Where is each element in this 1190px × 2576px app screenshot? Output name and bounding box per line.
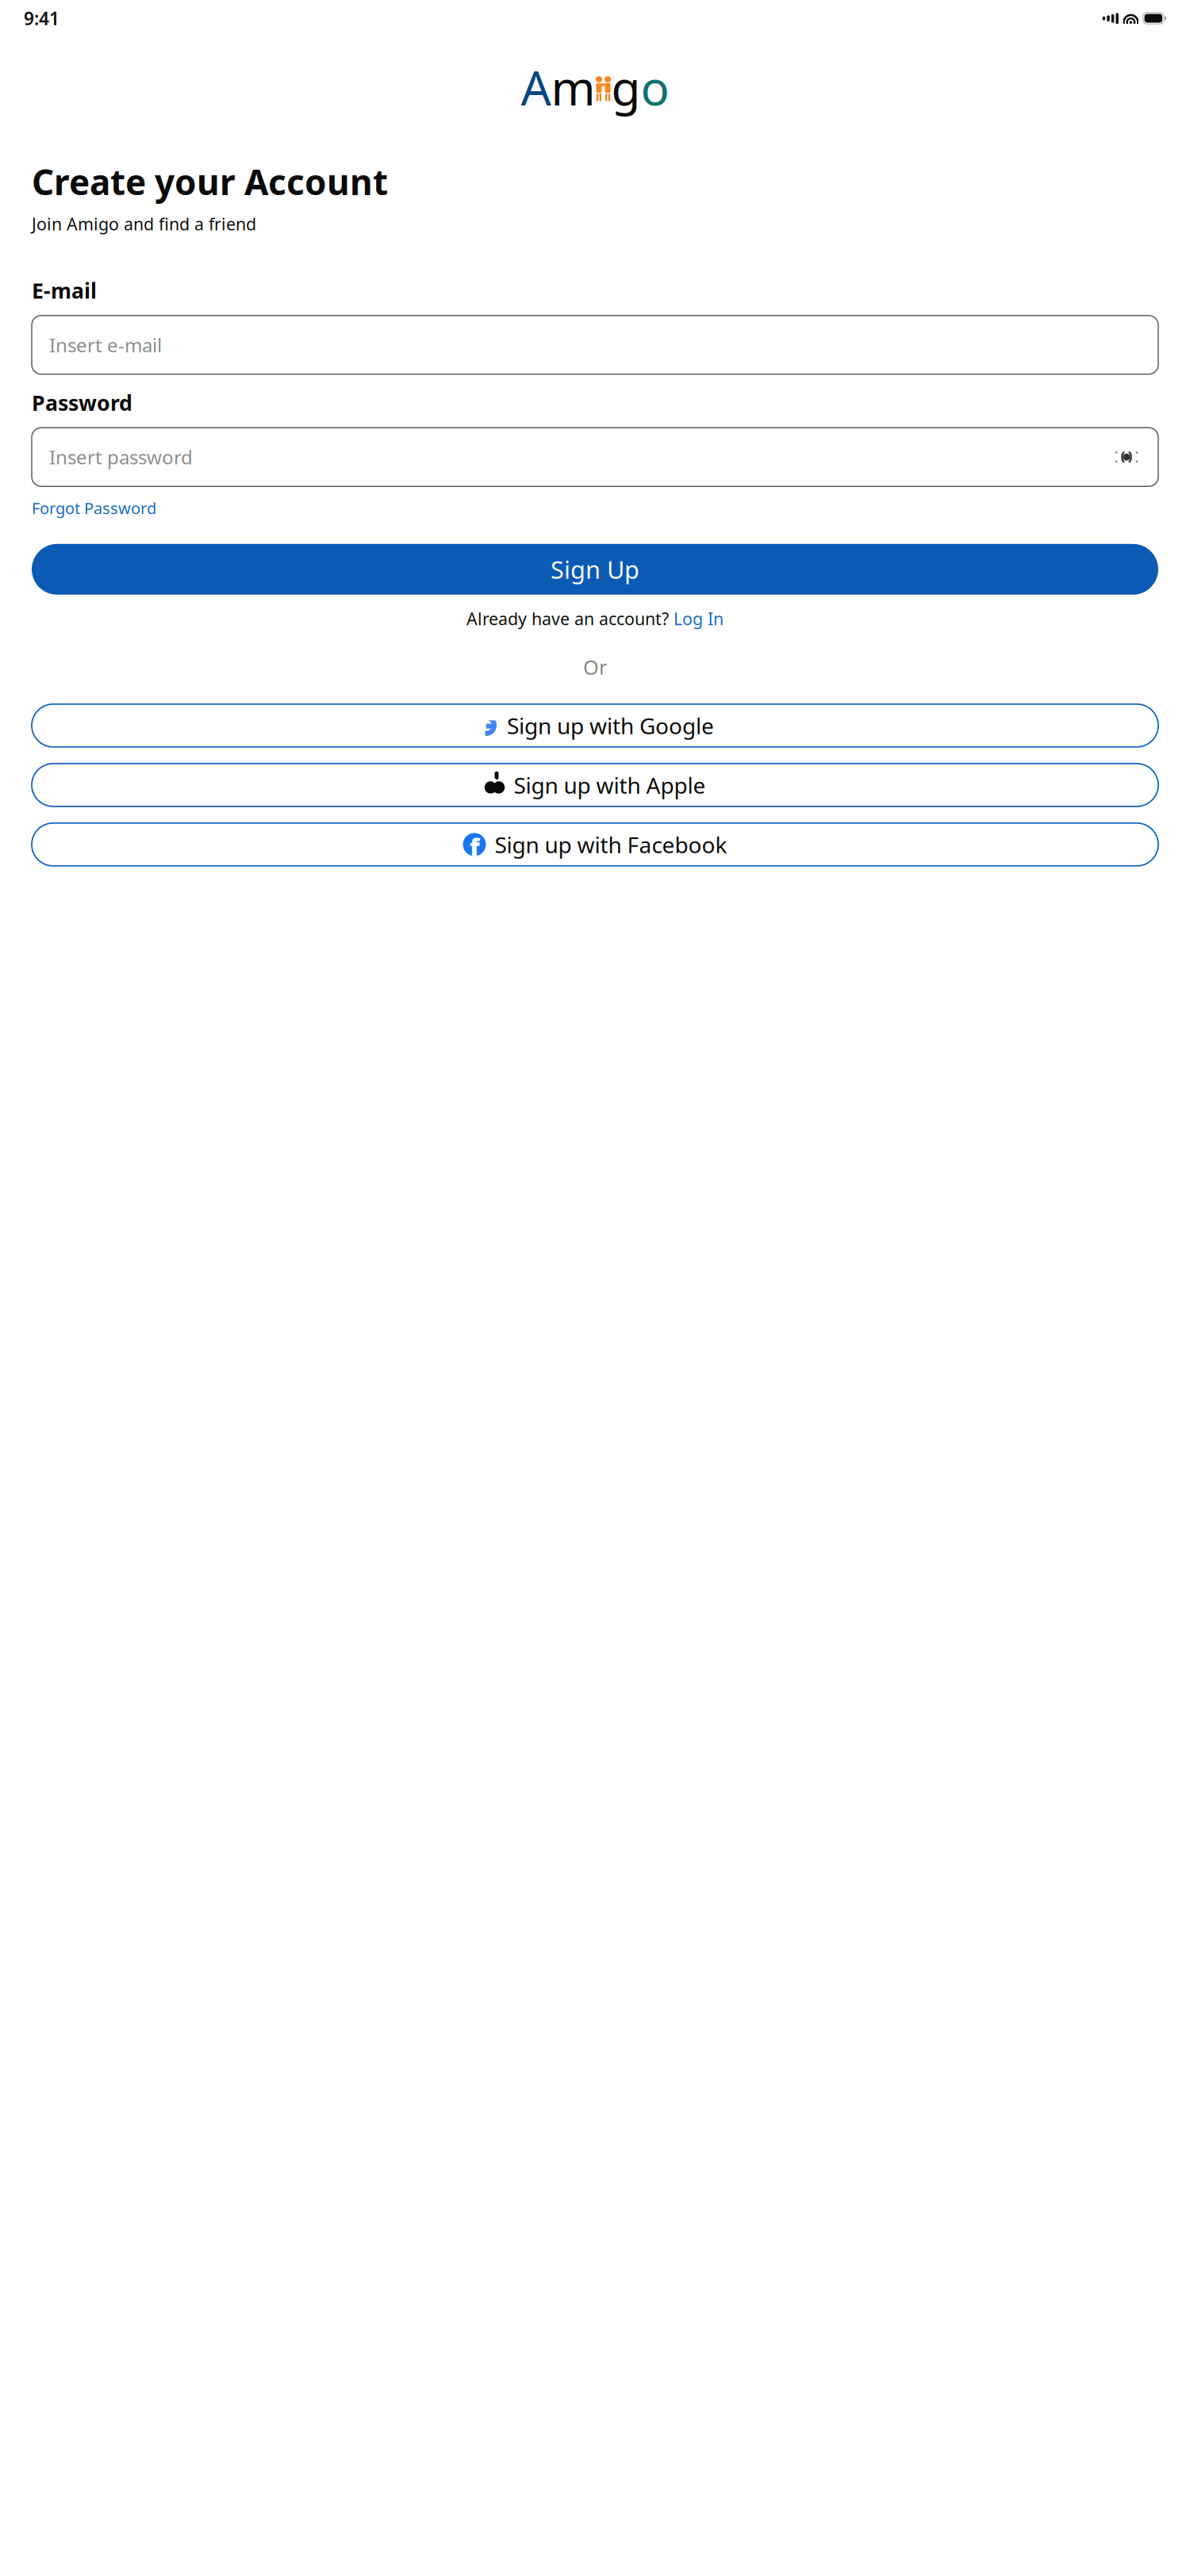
button[interactable]: Sign Up [32,544,1158,595]
staticText: Insert password [49,444,193,470]
staticText: 9:41 [24,6,59,30]
staticText: E-mail [32,276,97,304]
staticText: Insert e-mail [49,332,162,358]
staticText: Or [583,654,607,680]
button[interactable]: Sign up with Google [32,704,1158,747]
staticText: Sign up with Facebook [495,830,727,859]
staticText: Password [32,388,132,417]
staticText: A [521,56,551,119]
button[interactable]: Already have an account? [32,607,1158,630]
button[interactable]: f [32,823,1158,866]
staticText: o [641,56,669,119]
staticText: Already have an account? [466,607,674,630]
button[interactable]: Forgot Password [32,494,156,522]
staticText: Join Amigo and find a friend [32,213,256,235]
staticText: Forgot Password [32,498,156,519]
staticText: f [470,830,480,863]
button[interactable]: Show password [1112,443,1141,471]
staticText: g [611,56,641,119]
staticText: Sign up with Apple [514,770,706,800]
staticText: Log In [674,607,724,630]
button[interactable]: Sign up with Apple [32,764,1158,806]
staticText: m [551,56,595,119]
staticText: Sign Up [551,553,639,585]
staticText: Create your Account [32,158,388,205]
staticText: Sign up with Google [507,711,714,740]
